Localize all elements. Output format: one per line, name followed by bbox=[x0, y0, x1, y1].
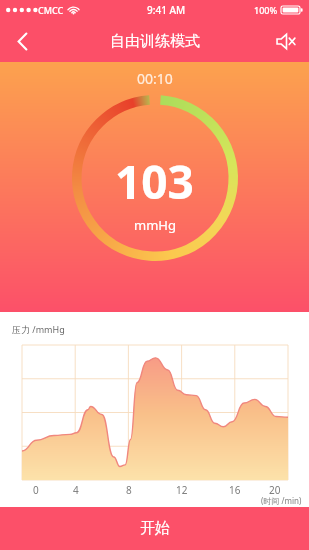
button[interactable]: Back bbox=[0, 20, 44, 62]
staticText: 12 bbox=[176, 483, 188, 497]
staticText: (时间 /min) bbox=[261, 495, 302, 506]
staticText: 0 bbox=[33, 483, 39, 497]
button[interactable]: 开始 bbox=[0, 507, 309, 550]
staticText: 4 bbox=[73, 483, 79, 497]
button[interactable]: Mute bbox=[263, 20, 309, 62]
staticText: 8 bbox=[126, 483, 132, 497]
staticText: 自由训练模式 bbox=[110, 32, 200, 51]
staticText: 16 bbox=[229, 483, 241, 497]
staticText: 100% bbox=[254, 4, 278, 16]
staticText: 103 bbox=[115, 150, 194, 213]
staticText: 00:10 bbox=[137, 69, 173, 88]
staticText: CMCC bbox=[38, 4, 64, 16]
staticText: 开始 bbox=[140, 519, 170, 538]
staticText: 9:41 AM bbox=[147, 3, 186, 17]
staticText: 压力 /mmHg bbox=[12, 323, 65, 335]
staticText: 20 bbox=[269, 483, 281, 497]
staticText: mmHg bbox=[134, 216, 176, 234]
